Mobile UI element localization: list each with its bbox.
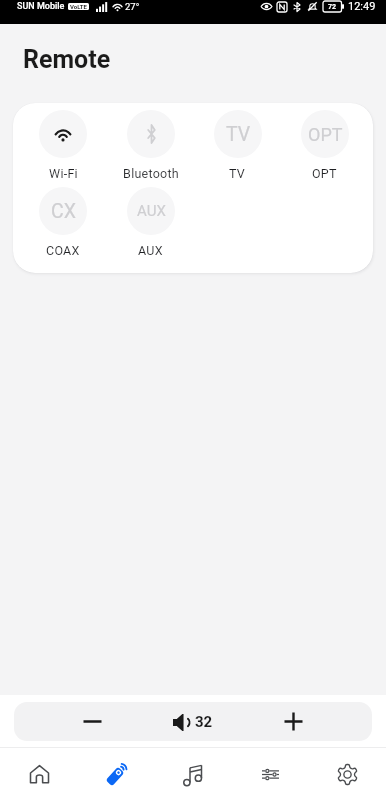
staticText: 72	[328, 3, 337, 11]
button[interactable]: Settings	[309, 748, 386, 800]
staticText: CX	[51, 200, 76, 223]
staticText: SUN Mobile	[17, 1, 65, 12]
button[interactable]: Home	[0, 748, 78, 800]
staticText: Remote	[23, 45, 111, 74]
staticText: 12:49	[348, 0, 376, 13]
button[interactable]: Music	[155, 748, 232, 800]
button[interactable]: Wi-Fi	[19, 110, 107, 181]
button[interactable]: Equalizer	[232, 748, 309, 800]
staticText: AUX	[138, 243, 163, 258]
button[interactable]: Volume down	[14, 702, 171, 741]
button[interactable]: Remote	[78, 748, 155, 800]
button[interactable]: OPT	[281, 110, 368, 181]
staticText: Bluetooth	[123, 166, 179, 181]
staticText: Wi-Fi	[49, 166, 78, 181]
staticText: OPT	[308, 124, 343, 145]
staticText: 27°	[125, 1, 140, 12]
button[interactable]: Volume up	[215, 702, 372, 741]
button[interactable]: Bluetooth	[107, 110, 194, 181]
staticText: AUX	[137, 202, 166, 220]
button[interactable]: AUX	[107, 187, 194, 258]
staticText: OPT	[312, 166, 337, 181]
staticText: 32	[195, 713, 213, 731]
button[interactable]: CX	[19, 187, 107, 258]
staticText: COAX	[46, 243, 80, 258]
staticText: TV	[229, 166, 246, 181]
button[interactable]: TV	[194, 110, 281, 181]
staticText: TV	[226, 123, 251, 146]
staticText: VoLTE	[70, 3, 87, 10]
